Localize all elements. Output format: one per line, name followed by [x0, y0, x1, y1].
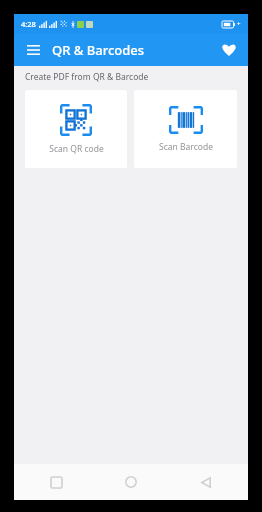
staticText: 4:28 [21, 19, 36, 29]
staticText: Create PDF from QR & Barcode [25, 71, 149, 83]
button[interactable]: Recent apps [42, 468, 70, 496]
button[interactable]: Favorites [216, 37, 242, 63]
button[interactable]: Open navigation menu [20, 37, 46, 63]
button[interactable]: Back [192, 468, 220, 496]
button[interactable]: Scan QR code [25, 90, 127, 168]
staticText: QR & Barcodes [52, 41, 145, 59]
staticText: Scan QR code [49, 143, 104, 155]
button[interactable]: Scan Barcode [134, 90, 237, 168]
staticText: + [237, 20, 241, 28]
button[interactable]: Home [117, 468, 145, 496]
staticText: Scan Barcode [159, 141, 213, 153]
